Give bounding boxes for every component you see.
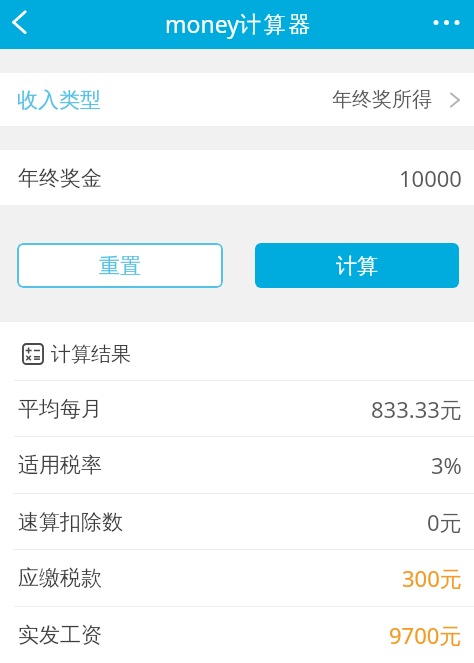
staticText: 3% [431,450,462,480]
staticText: 重置 [99,253,141,279]
staticText: 300元 [402,563,462,593]
button[interactable]: 平均每月 [0,381,474,436]
button[interactable]: More options [424,0,474,49]
button[interactable]: 速算扣除数 [0,494,474,549]
staticText: 9700元 [389,620,462,650]
staticText: 833.33元 [371,394,462,424]
button[interactable]: 应缴税款 [0,550,474,606]
staticText: 10000 [399,163,462,193]
staticText: 实发工资 [18,622,102,648]
staticText: 适用税率 [18,452,102,478]
button[interactable]: 收入类型 [0,73,474,126]
button[interactable]: 计算 [255,243,459,288]
staticText: 年终奖所得 [332,87,432,112]
staticText: 应缴税款 [18,565,102,591]
staticText: 收入类型 [17,87,101,113]
staticText: 年终奖金 [18,165,102,191]
staticText: 速算扣除数 [18,509,123,535]
staticText: 计算 [336,253,378,279]
staticText: 计算器 [239,11,314,39]
staticText: 平均每月 [18,396,102,422]
button[interactable]: 适用税率 [0,437,474,493]
button[interactable]: 实发工资 [0,607,474,663]
staticText: 计算结果 [51,342,131,367]
button[interactable]: Back [0,0,44,49]
staticText: money [165,8,239,39]
staticText: 0元 [427,507,462,537]
button[interactable]: 年终奖金 [0,150,474,205]
button[interactable]: 重置 [17,243,223,288]
